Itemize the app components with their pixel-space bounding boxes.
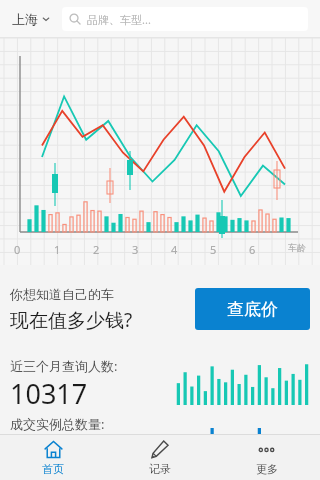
- staticText: 现在值多少钱?: [10, 307, 133, 333]
- staticText: 6: [249, 242, 256, 257]
- staticText: 5: [210, 242, 217, 257]
- staticText: 2: [93, 242, 100, 257]
- staticText: 品牌、车型...: [87, 12, 151, 27]
- button[interactable]: 查底价: [195, 288, 310, 330]
- staticText: 0: [14, 242, 21, 257]
- button[interactable]: 记录: [106, 435, 213, 480]
- staticText: 你想知道自己的车: [10, 286, 114, 302]
- staticText: 记录: [149, 462, 171, 476]
- button[interactable]: 更多: [213, 435, 320, 480]
- staticText: 10317: [10, 375, 88, 412]
- button[interactable]: 上海: [10, 7, 52, 31]
- staticText: 车龄: [288, 242, 306, 253]
- staticText: 查底价: [227, 299, 278, 320]
- button[interactable]: 品牌、车型...: [62, 7, 308, 31]
- staticText: 首页: [42, 462, 64, 476]
- staticText: 3: [132, 242, 139, 257]
- staticText: 成交实例总数量:: [10, 415, 105, 433]
- staticText: 更多: [256, 462, 278, 476]
- staticText: 1: [54, 242, 61, 257]
- button[interactable]: 首页: [0, 435, 106, 480]
- staticText: 近三个月查询人数:: [10, 357, 118, 375]
- staticText: 上海: [12, 11, 38, 27]
- staticText: 4: [171, 242, 178, 257]
